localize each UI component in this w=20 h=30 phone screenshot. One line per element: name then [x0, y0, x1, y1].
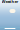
- staticText: Weather: [1, 0, 18, 4]
